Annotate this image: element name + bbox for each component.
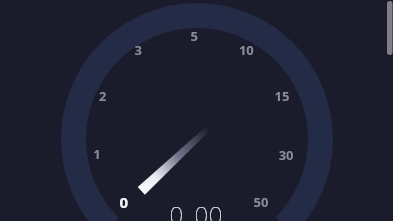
button[interactable]: [0, 0, 393, 221]
